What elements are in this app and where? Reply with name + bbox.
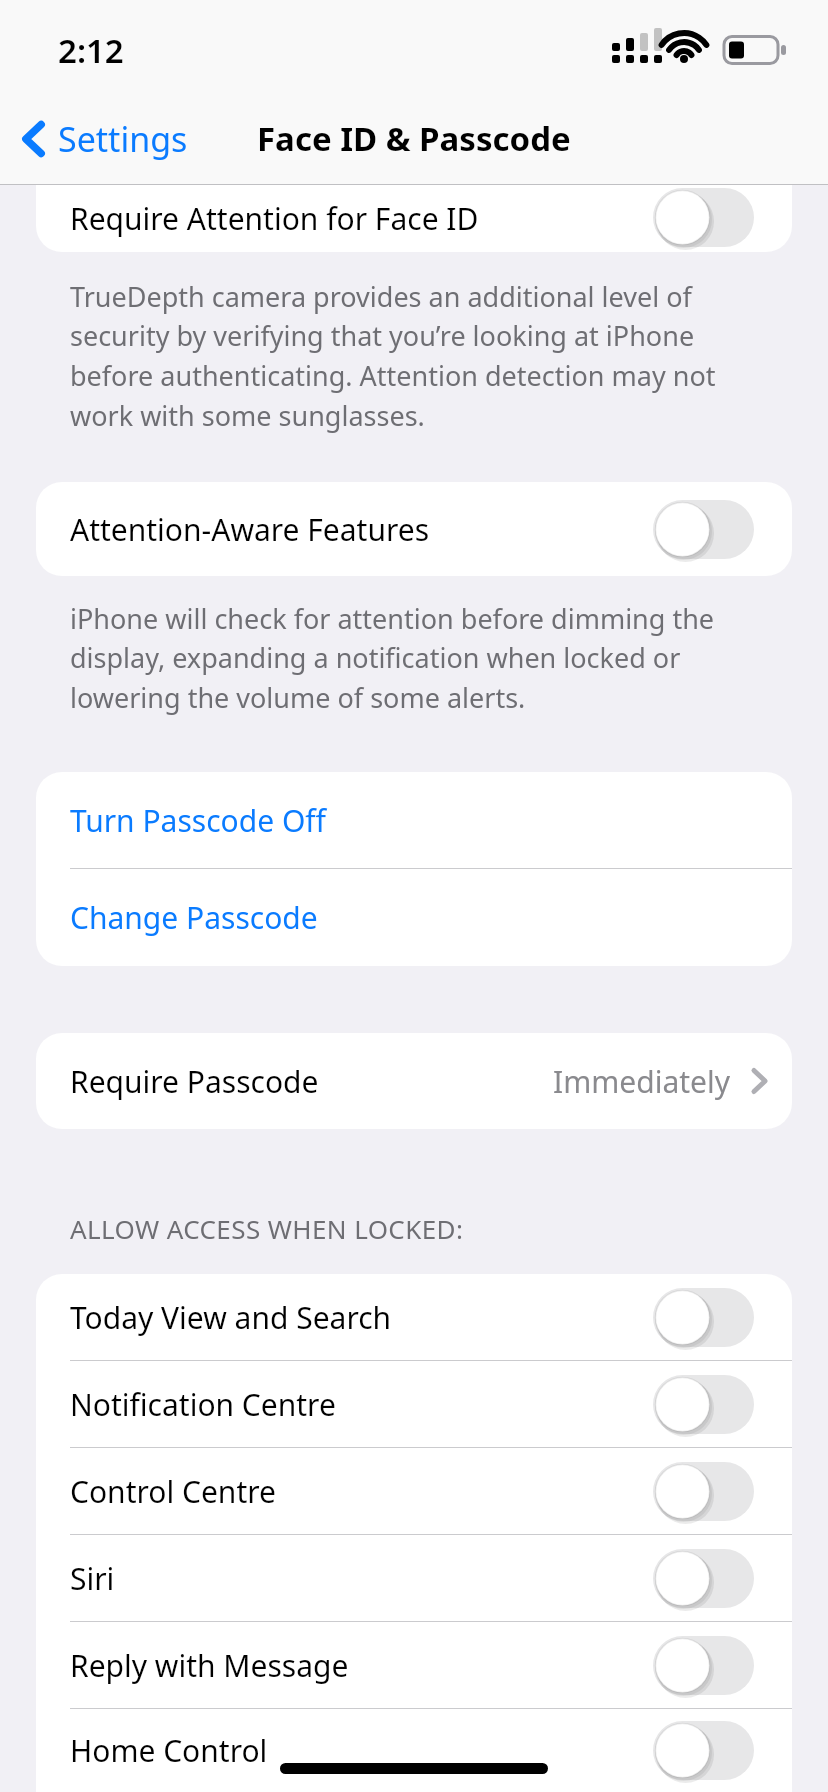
staticText: TrueDepth camera provides an additional … bbox=[70, 278, 758, 434]
button[interactable]: Notification Centre bbox=[36, 1361, 792, 1447]
staticText: Home Control bbox=[70, 1730, 653, 1771]
button[interactable]: Back bbox=[22, 92, 188, 185]
button[interactable]: Require Attention for Face ID bbox=[36, 185, 792, 252]
staticText: Today View and Search bbox=[70, 1297, 653, 1338]
button[interactable]: Toggle bbox=[653, 1636, 754, 1695]
other: Back bbox=[22, 117, 46, 161]
button[interactable]: Reply with Message bbox=[36, 1622, 792, 1708]
button[interactable]: Toggle bbox=[653, 500, 754, 559]
button[interactable]: Siri bbox=[36, 1535, 792, 1621]
staticText: iPhone will check for attention before d… bbox=[70, 600, 758, 716]
staticText: Notification Centre bbox=[70, 1384, 653, 1425]
staticText: Control Centre bbox=[70, 1471, 653, 1512]
button[interactable]: Home Control bbox=[36, 1709, 792, 1792]
button[interactable]: Control Centre bbox=[36, 1448, 792, 1534]
button[interactable]: Attention-Aware Features bbox=[36, 482, 792, 576]
staticText: Immediately bbox=[553, 1061, 730, 1102]
button[interactable]: Toggle bbox=[653, 1375, 754, 1434]
staticText: Settings bbox=[58, 116, 188, 162]
button[interactable]: Today View and Search bbox=[36, 1274, 792, 1360]
staticText: Require Passcode bbox=[70, 1061, 553, 1102]
staticText: Turn Passcode Off bbox=[70, 800, 326, 841]
staticText: Face ID & Passcode bbox=[257, 116, 571, 161]
staticText: Siri bbox=[70, 1558, 653, 1599]
button[interactable]: Toggle bbox=[653, 1462, 754, 1521]
button[interactable]: Toggle bbox=[653, 1549, 754, 1608]
button[interactable]: Require Passcode bbox=[36, 1033, 792, 1129]
button[interactable]: Change Passcode bbox=[36, 869, 792, 966]
button[interactable]: Toggle bbox=[653, 188, 754, 247]
staticText: Change Passcode bbox=[70, 897, 318, 938]
button[interactable]: Turn Passcode Off bbox=[36, 772, 792, 868]
staticText: Reply with Message bbox=[70, 1645, 653, 1686]
button[interactable]: Toggle bbox=[653, 1721, 754, 1780]
button[interactable]: Toggle bbox=[653, 1288, 754, 1347]
staticText: ALLOW ACCESS WHEN LOCKED: bbox=[70, 1211, 464, 1246]
staticText: 2:12 bbox=[58, 28, 124, 73]
staticText: Require Attention for Face ID bbox=[70, 198, 653, 239]
staticText: Attention-Aware Features bbox=[70, 509, 653, 550]
